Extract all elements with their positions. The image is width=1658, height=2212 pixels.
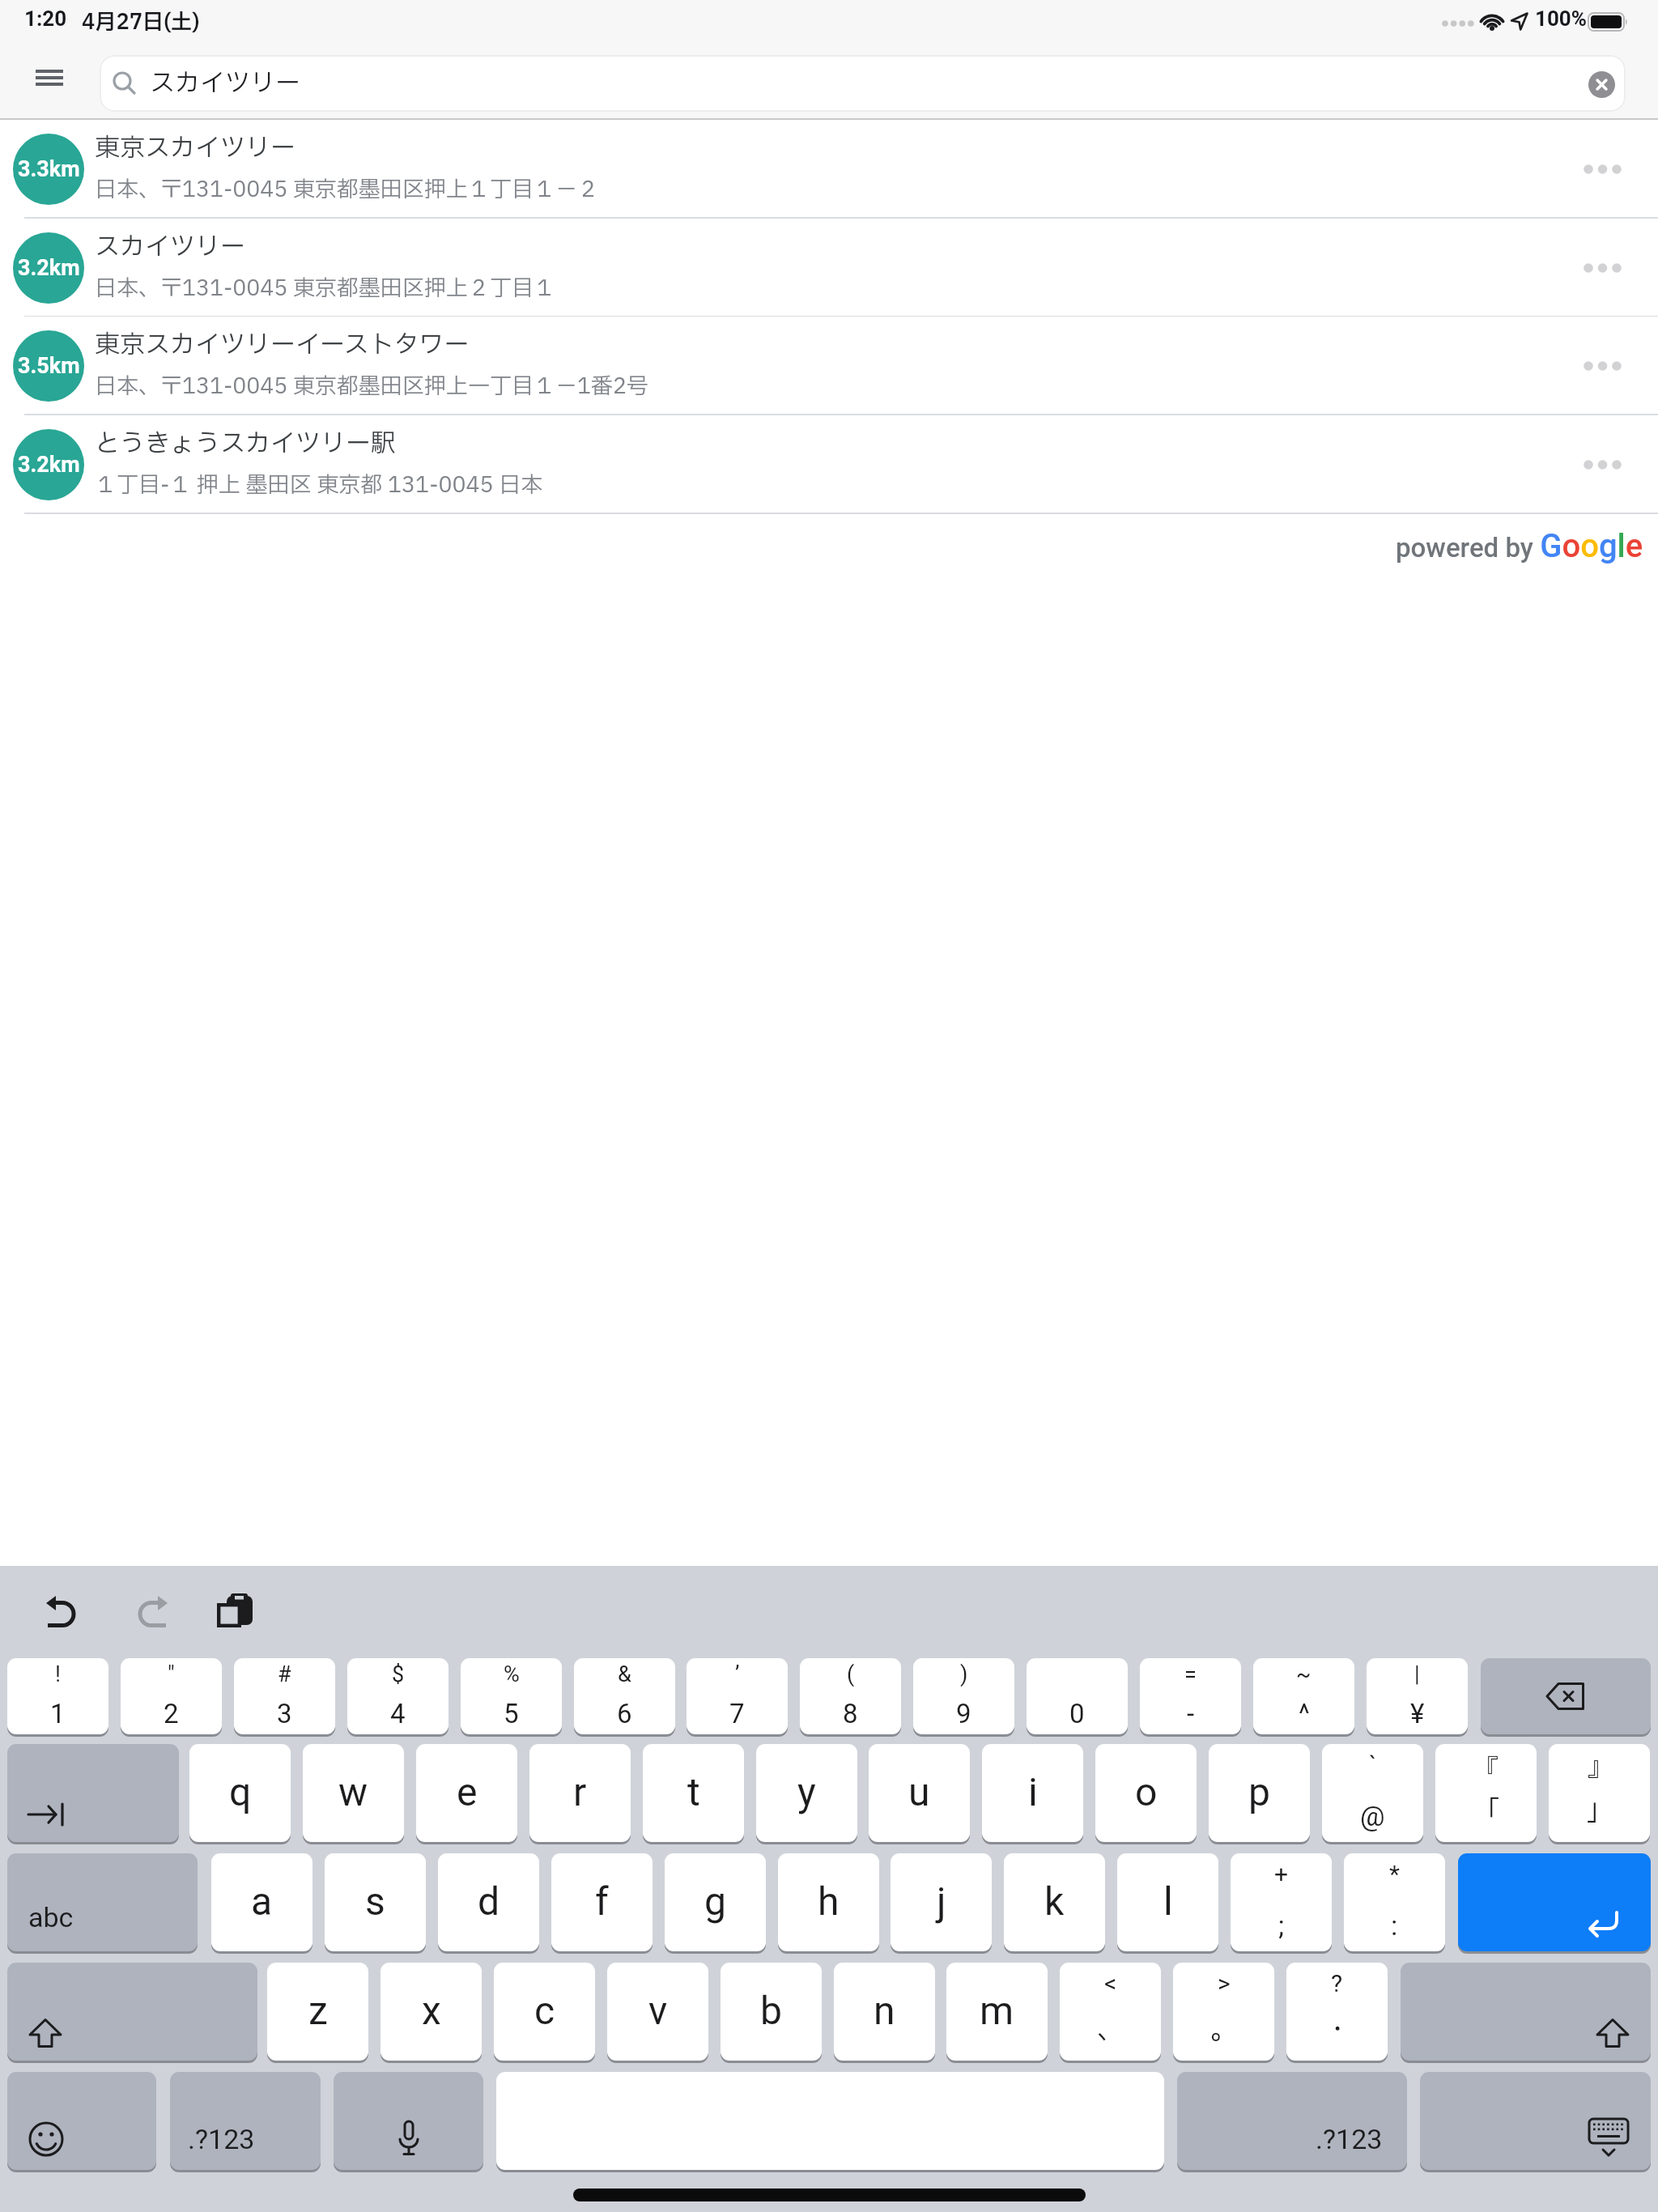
- button[interactable]: v: [607, 1963, 708, 2061]
- button[interactable]: $: [347, 1658, 449, 1734]
- button[interactable]: s: [325, 1853, 426, 1951]
- staticText: 6: [617, 1698, 632, 1729]
- button[interactable]: [209, 1585, 261, 1636]
- staticText: 3.5km: [18, 353, 80, 379]
- button[interactable]: [7, 2072, 156, 2170]
- button[interactable]: d: [438, 1853, 539, 1951]
- staticText: $: [392, 1661, 405, 1687]
- button[interactable]: .?123: [1177, 2072, 1407, 2170]
- button[interactable]: e: [416, 1744, 517, 1842]
- button[interactable]: h: [778, 1853, 879, 1951]
- button[interactable]: a: [211, 1853, 312, 1951]
- button[interactable]: [7, 1744, 179, 1842]
- button[interactable]: o: [1095, 1744, 1197, 1842]
- button[interactable]: g: [665, 1853, 766, 1951]
- staticText: 1:20: [24, 6, 67, 31]
- button[interactable]: p: [1209, 1744, 1310, 1842]
- staticText: c: [534, 1988, 555, 2033]
- button[interactable]: y: [756, 1744, 857, 1842]
- button[interactable]: [1583, 68, 1620, 100]
- button[interactable]: q: [189, 1744, 291, 1842]
- staticText: abc: [28, 1901, 74, 1933]
- button[interactable]: [1571, 152, 1639, 186]
- staticText: m: [980, 1988, 1014, 2033]
- button[interactable]: [40, 1590, 86, 1632]
- button[interactable]: [1458, 1853, 1651, 1951]
- staticText: スカイツリー: [150, 65, 300, 102]
- button[interactable]: x: [380, 1963, 482, 2061]
- button[interactable]: スカイツリー: [100, 55, 1626, 112]
- staticText: d: [478, 1878, 500, 1924]
- button[interactable]: r: [529, 1744, 631, 1842]
- button[interactable]: >: [1173, 1963, 1274, 2061]
- staticText: k: [1044, 1878, 1065, 1924]
- button[interactable]: |: [1367, 1658, 1468, 1734]
- button[interactable]: 3.3km: [0, 120, 1658, 219]
- button[interactable]: [334, 2072, 483, 2170]
- button[interactable]: z: [267, 1963, 368, 2061]
- button[interactable]: ″: [121, 1658, 222, 1734]
- staticText: 0: [1069, 1698, 1085, 1729]
- staticText: x: [422, 1988, 441, 2033]
- button[interactable]: 0: [1027, 1658, 1128, 1734]
- staticText: 2: [164, 1698, 179, 1729]
- staticText: +: [1274, 1860, 1289, 1888]
- button[interactable]: =: [1140, 1658, 1241, 1734]
- button[interactable]: abc: [7, 1853, 198, 1951]
- staticText: `: [1369, 1750, 1377, 1779]
- staticText: 『: [1474, 1750, 1499, 1787]
- button[interactable]: .?123: [170, 2072, 321, 2170]
- button[interactable]: (: [800, 1658, 901, 1734]
- staticText: y: [797, 1769, 816, 1814]
- button[interactable]: [1571, 251, 1639, 285]
- button[interactable]: u: [869, 1744, 970, 1842]
- button[interactable]: !: [7, 1658, 108, 1734]
- button[interactable]: 『: [1435, 1744, 1537, 1842]
- button[interactable]: ~: [1253, 1658, 1354, 1734]
- staticText: q: [229, 1769, 252, 1814]
- staticText: r: [573, 1769, 587, 1814]
- button[interactable]: [1420, 2072, 1651, 2170]
- button[interactable]: l: [1117, 1853, 1218, 1951]
- button[interactable]: ’: [687, 1658, 788, 1734]
- button[interactable]: `: [1322, 1744, 1423, 1842]
- button[interactable]: 3.2km: [0, 219, 1658, 317]
- button[interactable]: ): [913, 1658, 1014, 1734]
- staticText: 3.2km: [18, 255, 80, 281]
- button[interactable]: j: [891, 1853, 992, 1951]
- button[interactable]: +: [1231, 1853, 1332, 1951]
- button[interactable]: b: [721, 1963, 822, 2061]
- button[interactable]: ?: [1286, 1963, 1388, 2061]
- button[interactable]: m: [946, 1963, 1048, 2061]
- staticText: %: [504, 1661, 520, 1687]
- button[interactable]: c: [494, 1963, 595, 2061]
- button[interactable]: [24, 55, 74, 100]
- button[interactable]: [128, 1590, 173, 1632]
- staticText: 8: [843, 1698, 858, 1729]
- button[interactable]: 3.2km: [0, 415, 1658, 514]
- button[interactable]: [1571, 448, 1639, 482]
- button[interactable]: &: [574, 1658, 675, 1734]
- button[interactable]: w: [303, 1744, 404, 1842]
- staticText: e: [457, 1769, 478, 1814]
- staticText: ¥: [1410, 1698, 1425, 1729]
- button[interactable]: k: [1004, 1853, 1105, 1951]
- button[interactable]: [1481, 1658, 1651, 1734]
- button[interactable]: i: [982, 1744, 1083, 1842]
- staticText: 1: [50, 1698, 66, 1729]
- button[interactable]: <: [1060, 1963, 1161, 2061]
- button[interactable]: [7, 1963, 257, 2061]
- button[interactable]: #: [234, 1658, 335, 1734]
- button[interactable]: f: [551, 1853, 653, 1951]
- button[interactable]: %: [461, 1658, 562, 1734]
- button[interactable]: 』: [1549, 1744, 1650, 1842]
- button[interactable]: [1401, 1963, 1651, 2061]
- button[interactable]: n: [834, 1963, 935, 2061]
- staticText: .?123: [1316, 2123, 1383, 2155]
- button[interactable]: [1571, 349, 1639, 383]
- button[interactable]: *: [1344, 1853, 1445, 1951]
- button[interactable]: t: [643, 1744, 744, 1842]
- staticText: b: [760, 1988, 782, 2033]
- button[interactable]: 3.5km: [0, 317, 1658, 415]
